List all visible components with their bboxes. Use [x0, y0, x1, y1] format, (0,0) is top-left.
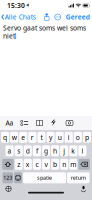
staticText: n [62, 160, 66, 169]
button[interactable]: x [24, 159, 32, 170]
staticText: spatie [37, 174, 52, 181]
staticText: z [17, 160, 20, 169]
button[interactable]: a [6, 145, 14, 156]
button[interactable]: Dictate [80, 185, 87, 192]
button[interactable]: v [42, 159, 50, 170]
staticText: g [44, 146, 48, 155]
staticText: i [68, 133, 70, 142]
button[interactable]: m [69, 159, 77, 170]
button[interactable]: Table [35, 118, 44, 127]
button[interactable]: Delete [78, 159, 90, 170]
staticText: k [71, 146, 75, 155]
button[interactable]: return [67, 172, 89, 183]
staticText: m [70, 160, 76, 169]
button[interactable]: More options [55, 14, 61, 20]
staticText: return [71, 174, 86, 181]
staticText: j [63, 146, 65, 155]
button[interactable]: e [19, 132, 27, 143]
staticText: x [26, 160, 30, 169]
button[interactable]: y [46, 132, 55, 143]
button[interactable]: Camera [65, 118, 74, 127]
staticText: u [58, 133, 62, 142]
staticText: e [21, 133, 25, 142]
staticText: v [44, 160, 47, 169]
button[interactable]: Shift [2, 159, 14, 170]
button[interactable]: Attach [50, 118, 59, 127]
staticText: Aa [5, 119, 13, 127]
button[interactable]: t [37, 132, 45, 143]
button[interactable]: Share [44, 13, 50, 20]
staticText: niet [3, 32, 15, 40]
staticText: y [49, 133, 52, 142]
staticText: q [3, 133, 7, 142]
staticText: a [8, 146, 12, 155]
button[interactable]: Checklist [20, 118, 29, 127]
staticText: c [35, 160, 38, 169]
staticText: d [26, 146, 30, 155]
staticText: s [17, 146, 20, 155]
staticText: Alle Chats [5, 13, 36, 21]
button[interactable]: l [78, 145, 86, 156]
button[interactable]: Change keyboard [5, 185, 12, 192]
button[interactable]: b [51, 159, 59, 170]
staticText: p [85, 133, 89, 142]
button[interactable]: p [83, 132, 91, 143]
staticText: o [76, 133, 80, 142]
button[interactable]: k [69, 145, 77, 156]
staticText: t [40, 133, 42, 142]
button[interactable]: g [42, 145, 50, 156]
button[interactable]: z [15, 159, 23, 170]
staticText: w [12, 133, 17, 142]
button[interactable]: o [74, 132, 82, 143]
button[interactable]: Alle Chats [1, 13, 36, 21]
button[interactable]: spatie [23, 172, 66, 183]
button[interactable]: Emoji [14, 172, 22, 183]
button[interactable]: f [33, 145, 41, 156]
staticText: b [53, 160, 57, 169]
button[interactable]: u [56, 132, 64, 143]
button[interactable]: w [10, 132, 18, 143]
button[interactable]: q [1, 132, 9, 143]
button[interactable]: h [51, 145, 59, 156]
button[interactable]: n [60, 159, 68, 170]
staticText: l [81, 146, 83, 155]
button[interactable]: 123 [2, 172, 13, 183]
button[interactable]: d [24, 145, 32, 156]
button[interactable]: i [65, 132, 73, 143]
staticText: h [53, 146, 57, 155]
staticText: r [31, 133, 34, 142]
button[interactable]: Format [5, 118, 14, 127]
staticText: 15:30 [7, 1, 25, 10]
button[interactable]: s [15, 145, 23, 156]
staticText: Gereed [66, 13, 90, 21]
staticText: 123 [3, 174, 12, 181]
button[interactable]: c [33, 159, 41, 170]
staticText: Servo gaat soms wel soms [3, 24, 86, 32]
staticText: f [36, 146, 38, 155]
button[interactable]: Gereed [66, 13, 90, 21]
button[interactable]: j [60, 145, 68, 156]
button[interactable]: r [28, 132, 36, 143]
